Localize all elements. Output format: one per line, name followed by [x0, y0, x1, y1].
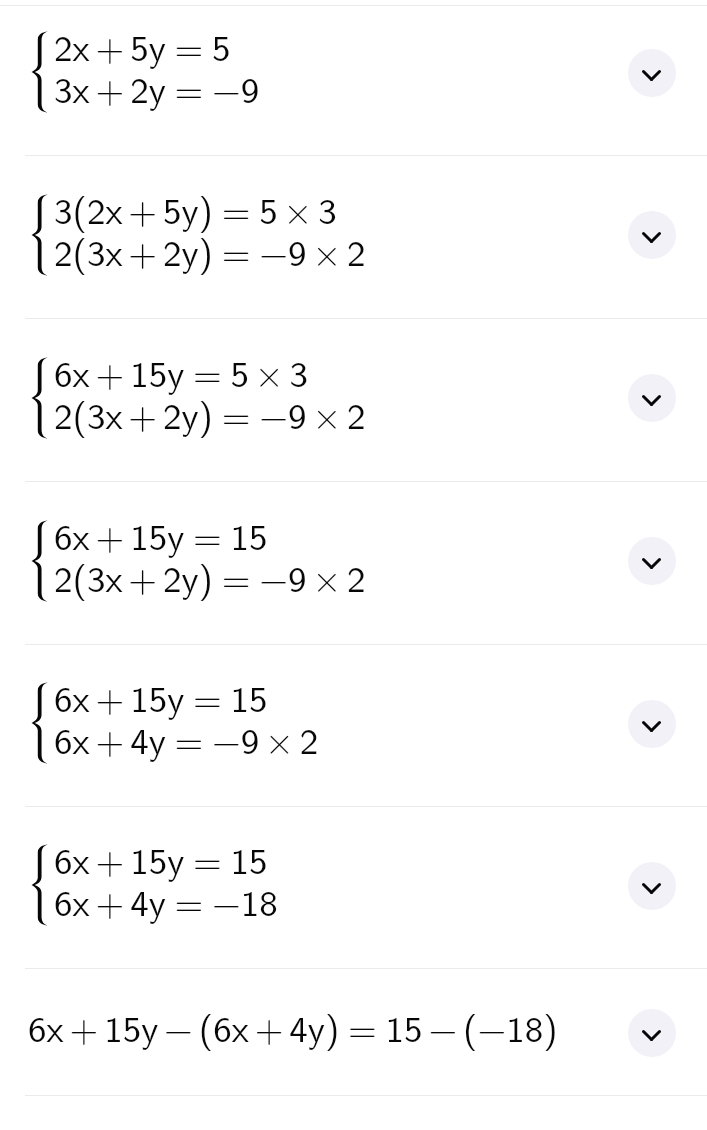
- button[interactable]: Expand step: [628, 211, 676, 259]
- staticText: 6x + 15y − (6x + 4y) = 15 − (−18): [28, 999, 558, 1053]
- button[interactable]: Expand step: [628, 49, 676, 97]
- staticText: 2x + 5y = 5 3x + 2y = −9: [54, 18, 260, 115]
- staticText: 3(2x + 5y) = 5 × 3 2(3x + 2y) = −9 × 2: [54, 181, 366, 278]
- staticText: 6x + 15y = 15 6x + 4y = −9 × 2: [54, 669, 319, 766]
- button[interactable]: 3(2x + 5y) = 5 × 3 2(3x + 2y) = −9 × 2: [0, 156, 707, 318]
- staticText: 6x + 15y = 15 6x + 4y = −18: [54, 831, 278, 928]
- staticText: 6x + 15y = 5 × 3 2(3x + 2y) = −9 × 2: [54, 344, 366, 441]
- button[interactable]: 6x + 15y = 15 6x + 4y = −9 × 2: [0, 645, 707, 806]
- button[interactable]: 6x + 15y = 15 2(3x + 2y) = −9 × 2: [0, 482, 707, 644]
- button[interactable]: Expand step: [628, 374, 676, 422]
- button[interactable]: Expand step: [628, 1009, 676, 1057]
- button[interactable]: 2x + 5y = 5 3x + 2y = −9: [0, 6, 707, 155]
- button[interactable]: Expand step: [628, 537, 676, 585]
- staticText: 6x + 15y = 15 2(3x + 2y) = −9 × 2: [54, 507, 366, 604]
- button[interactable]: 6x + 15y = 15 6x + 4y = −18: [0, 807, 707, 968]
- button[interactable]: Expand step: [628, 862, 676, 910]
- button[interactable]: Expand step: [628, 700, 676, 748]
- button[interactable]: 6x + 15y = 5 × 3 2(3x + 2y) = −9 × 2: [0, 319, 707, 481]
- button[interactable]: 6x + 15y − (6x + 4y) = 15 − (−18): [0, 969, 707, 1095]
